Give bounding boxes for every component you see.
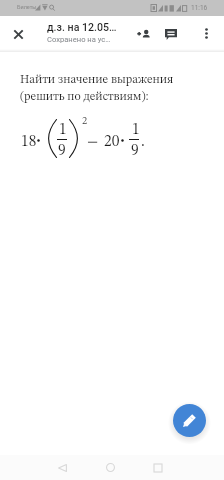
staticText: д.з. на 12.05… — [47, 21, 117, 33]
button[interactable]: Recent apps — [136, 455, 180, 480]
staticText: 1 — [132, 122, 140, 138]
staticText: 11:16 — [191, 4, 208, 12]
button[interactable]: Edit — [173, 404, 206, 437]
button[interactable]: Home — [88, 455, 132, 480]
staticText: Сохранено на ус… — [47, 35, 117, 44]
button[interactable]: More options — [193, 20, 219, 46]
staticText: 1 — [59, 122, 67, 138]
staticText: Билеты — [17, 4, 37, 10]
staticText: 9 — [58, 143, 66, 159]
button[interactable]: Back — [40, 455, 84, 480]
staticText: 9 — [131, 143, 139, 159]
staticText: 18 — [21, 134, 37, 150]
staticText: . — [141, 134, 145, 150]
staticText: Найти значение выражения (решить по дейс… — [20, 74, 174, 103]
button[interactable]: Add people — [130, 20, 158, 48]
button[interactable]: Comments — [157, 20, 185, 48]
button[interactable]: Close — [4, 20, 32, 48]
staticText: 20 — [104, 134, 120, 150]
staticText: 2 — [82, 116, 88, 127]
staticText: − — [87, 134, 99, 150]
